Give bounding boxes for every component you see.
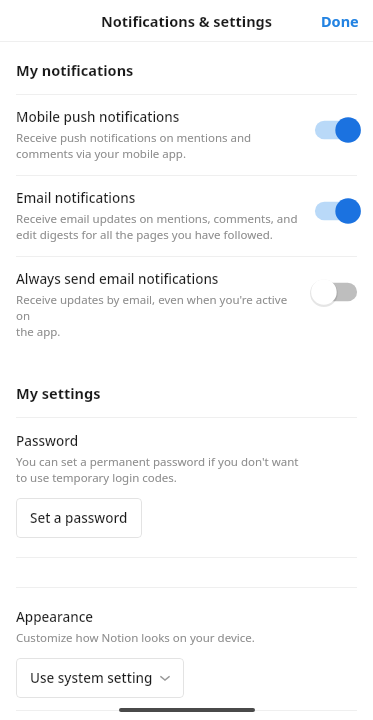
button[interactable]: Email notifications [309,195,363,227]
button[interactable]: Mobile push notifications [0,95,373,175]
staticText: Email notifications [16,189,136,207]
button[interactable]: Done [307,3,373,39]
staticText: My notifications [16,60,134,80]
button[interactable]: Mobile push notifications [309,114,363,146]
staticText: Appearance [16,608,94,626]
staticText: My settings [16,383,101,403]
button[interactable]: Always send email notifications [0,257,373,353]
staticText: Password [16,432,79,450]
staticText: Customize how Notion looks on your devic… [16,630,255,646]
staticText: You can set a permanent password if you … [16,454,299,486]
button[interactable]: Email notifications [0,176,373,256]
staticText: Always send email notifications [16,270,219,288]
staticText: Done [321,11,359,31]
staticText: Use system setting [30,669,153,687]
staticText: Set a password [30,509,128,527]
staticText: Receive updates by email, even when you'… [16,292,299,340]
button[interactable]: Set a password [16,498,142,538]
staticText: Mobile push notifications [16,108,180,126]
staticText: Notifications & settings [0,11,373,31]
staticText: Receive email updates on mentions, comme… [16,211,298,243]
button[interactable]: Use system setting [16,658,184,698]
button[interactable]: Always send email notifications [309,276,363,308]
staticText: Receive push notifications on mentions a… [16,130,252,162]
